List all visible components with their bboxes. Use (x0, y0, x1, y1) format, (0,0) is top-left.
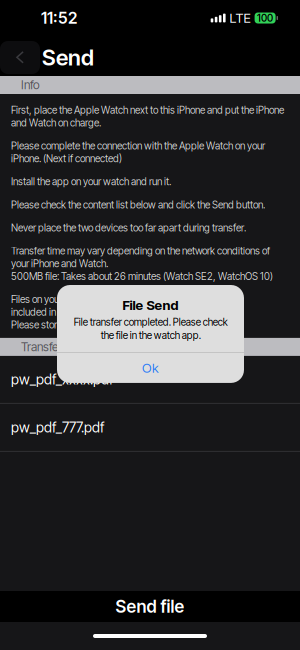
staticText: Transfer time may vary depending on the … (11, 245, 273, 282)
button[interactable]: pw_pdf_777.pdf (0, 404, 300, 452)
button[interactable]: Ok (57, 353, 244, 383)
staticText: Send (42, 44, 94, 71)
staticText: Please check the content list below and … (11, 199, 265, 211)
staticText: Send file (115, 596, 184, 617)
staticText: Files on your watch may be deleted unexp… (11, 293, 226, 331)
button[interactable]: Back (0, 41, 40, 74)
staticText: File Send (122, 297, 178, 313)
staticText: Never place the two devices too far apar… (11, 222, 246, 234)
staticText: Ok (142, 360, 159, 376)
staticText: pw_pdf_777.pdf (11, 419, 104, 436)
staticText: 11:52 (41, 8, 77, 28)
staticText: pw_pdf_xxxx.pdf (11, 371, 113, 388)
staticText: Info (21, 78, 40, 92)
button[interactable]: pw_pdf_xxxx.pdf (0, 356, 300, 404)
staticText: 100 (257, 12, 273, 24)
staticText: Please complete the connection with the … (11, 140, 265, 165)
staticText: File transfer completed. Please check th… (73, 316, 227, 341)
staticText: Transfer (21, 340, 62, 354)
button[interactable]: Send file (0, 591, 300, 622)
staticText: First, place the Apple Watch next to thi… (11, 104, 284, 129)
staticText: Install the app on your watch and run it… (11, 176, 171, 188)
staticText: LTE (230, 10, 251, 26)
